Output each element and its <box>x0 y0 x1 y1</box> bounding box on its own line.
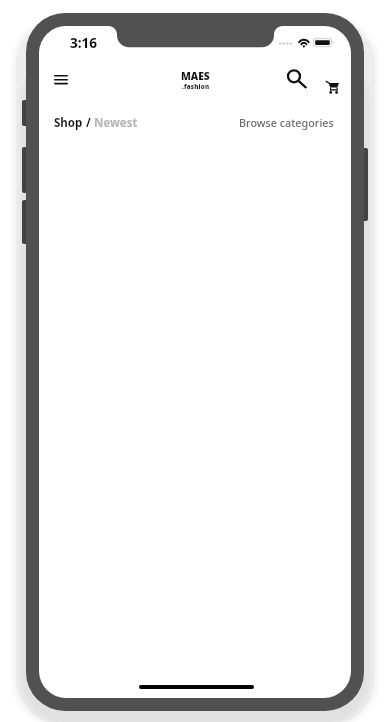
button[interactable]: Shop <box>51 112 141 134</box>
button[interactable]: Browse categories <box>236 112 337 133</box>
staticText: MAES <box>181 69 210 83</box>
staticText: / <box>83 115 94 131</box>
button[interactable]: Search <box>279 61 314 96</box>
staticText: 3:16 <box>70 34 97 52</box>
staticText: Newest <box>94 115 138 131</box>
staticText: Shop <box>54 115 83 131</box>
button[interactable]: Shopping cart <box>316 71 348 103</box>
button[interactable]: Open navigation menu <box>44 63 78 97</box>
staticText: Browse categories <box>239 115 334 130</box>
staticText: .fashion <box>182 82 210 90</box>
